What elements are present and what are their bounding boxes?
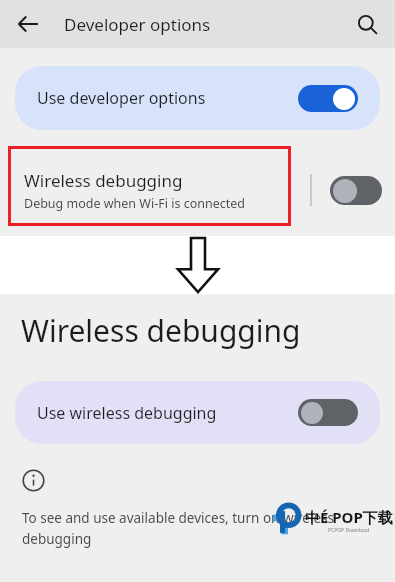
staticText: Use developer options — [37, 87, 298, 109]
staticText: 中É POP下载 — [305, 507, 393, 527]
button[interactable]: Wireless debugging — [0, 144, 395, 236]
staticText: Developer options — [64, 13, 211, 36]
button[interactable]: Use developer options — [15, 66, 380, 130]
button[interactable]: Toggle off — [330, 176, 382, 205]
staticText: PCPOP Download — [328, 527, 370, 534]
button[interactable]: Toggle off — [330, 176, 382, 205]
button[interactable]: Search — [347, 4, 387, 44]
staticText: Debug mode when Wi-Fi is connected — [24, 195, 245, 212]
staticText: debugging — [22, 530, 92, 548]
staticText: Wireless debugging — [21, 310, 301, 351]
button[interactable]: Toggle off — [298, 399, 358, 426]
button[interactable]: Toggle on — [298, 85, 358, 112]
staticText: To see and use available devices, turn o… — [22, 509, 334, 527]
button[interactable]: Back — [8, 4, 48, 44]
staticText: Use wireless debugging — [37, 402, 298, 424]
staticText: Wireless debugging — [24, 169, 183, 192]
button[interactable]: Use wireless debugging — [15, 381, 380, 444]
